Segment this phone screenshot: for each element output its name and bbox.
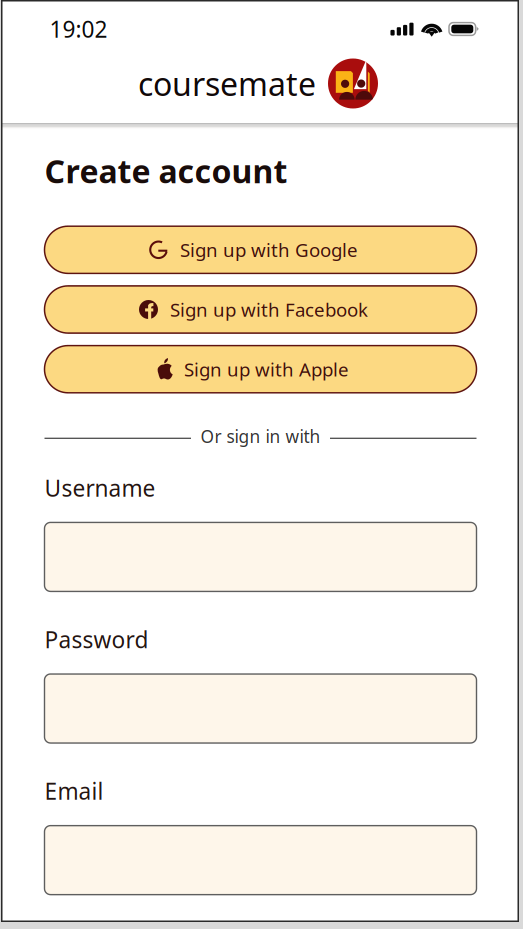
staticText: Create account [44,150,287,192]
staticText: Username [44,473,155,503]
staticText: coursemate [138,62,316,105]
button[interactable]: Sign up with Facebook [44,286,476,333]
staticText: Or sign in with [200,425,320,448]
button[interactable]: Sign up with Apple [44,346,476,393]
staticText: Email [44,776,103,806]
staticText: Sign up with Apple [184,357,349,382]
staticText: Sign up with Google [180,237,358,262]
button[interactable]: Sign up with Google [44,226,476,273]
staticText: Password [44,624,148,654]
staticText: Sign up with Facebook [170,297,368,322]
staticText: 19:02 [49,14,107,44]
